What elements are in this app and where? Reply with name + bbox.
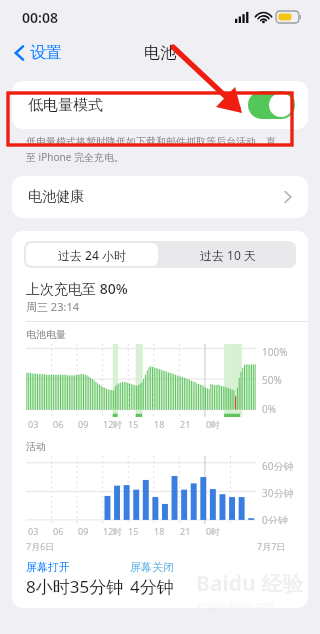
staticText: 09 — [78, 525, 89, 537]
staticText: 18 — [154, 418, 165, 430]
staticText: 7月6日 — [26, 540, 55, 552]
staticText: 4分钟 — [130, 575, 174, 598]
staticText: 电池 — [144, 43, 176, 63]
staticText: 上次充电至 80% — [26, 279, 128, 298]
staticText: 周三 23:14 — [26, 299, 79, 314]
button[interactable]: 低电量模式 — [12, 81, 308, 129]
staticText: 电池健康 — [28, 188, 84, 206]
button[interactable]: 电池健康 — [12, 176, 308, 218]
staticText: 屏幕关闭 — [130, 560, 174, 574]
staticText: 活动 — [26, 440, 46, 453]
staticText: 0分钟 — [262, 513, 288, 524]
button[interactable]: 过去 24 小时 — [26, 243, 158, 266]
staticText: 100% — [262, 345, 288, 359]
staticText: 低电量模式将暂时降低如下载和邮件抓取等后台活动，直 — [26, 135, 276, 148]
staticText: 30分钟 — [262, 486, 294, 500]
staticText: 09 — [78, 418, 89, 430]
button[interactable]: 低电量模式开关 — [248, 91, 295, 119]
staticText: 21 — [180, 525, 191, 537]
staticText: 21 — [180, 418, 191, 430]
staticText: 15 — [128, 418, 139, 430]
staticText: 00:08 — [22, 8, 58, 27]
staticText: jingyan.baidu.com — [196, 598, 274, 610]
staticText: 06 — [53, 525, 64, 537]
staticText: 03 — [28, 418, 39, 430]
staticText: 8小时35分钟 — [26, 575, 124, 598]
button[interactable]: 过去 10 天 — [160, 241, 296, 268]
staticText: 60分钟 — [262, 459, 294, 473]
button[interactable]: 设置 — [8, 39, 68, 67]
staticText: 电池电量 — [26, 328, 66, 341]
staticText: 屏幕打开 — [26, 560, 70, 574]
staticText: 0时 — [206, 525, 221, 537]
staticText: 设置 — [30, 43, 62, 63]
staticText: 0时 — [206, 418, 221, 430]
staticText: 18 — [154, 525, 165, 537]
staticText: 15 — [128, 525, 139, 537]
staticText: 03 — [28, 525, 39, 537]
staticText: 12时 — [103, 418, 123, 430]
staticText: Baidu 经验 — [196, 569, 304, 598]
staticText: 7月7日 — [257, 540, 286, 552]
staticText: 12时 — [103, 525, 123, 537]
staticText: 50% — [262, 373, 282, 387]
staticText: 至 iPhone 完全充电。 — [26, 150, 124, 164]
staticText: 过去 10 天 — [200, 247, 256, 263]
staticText: 0% — [262, 402, 277, 416]
staticText: 过去 24 小时 — [58, 247, 126, 263]
staticText: 06 — [53, 418, 64, 430]
staticText: 低电量模式 — [28, 96, 103, 115]
